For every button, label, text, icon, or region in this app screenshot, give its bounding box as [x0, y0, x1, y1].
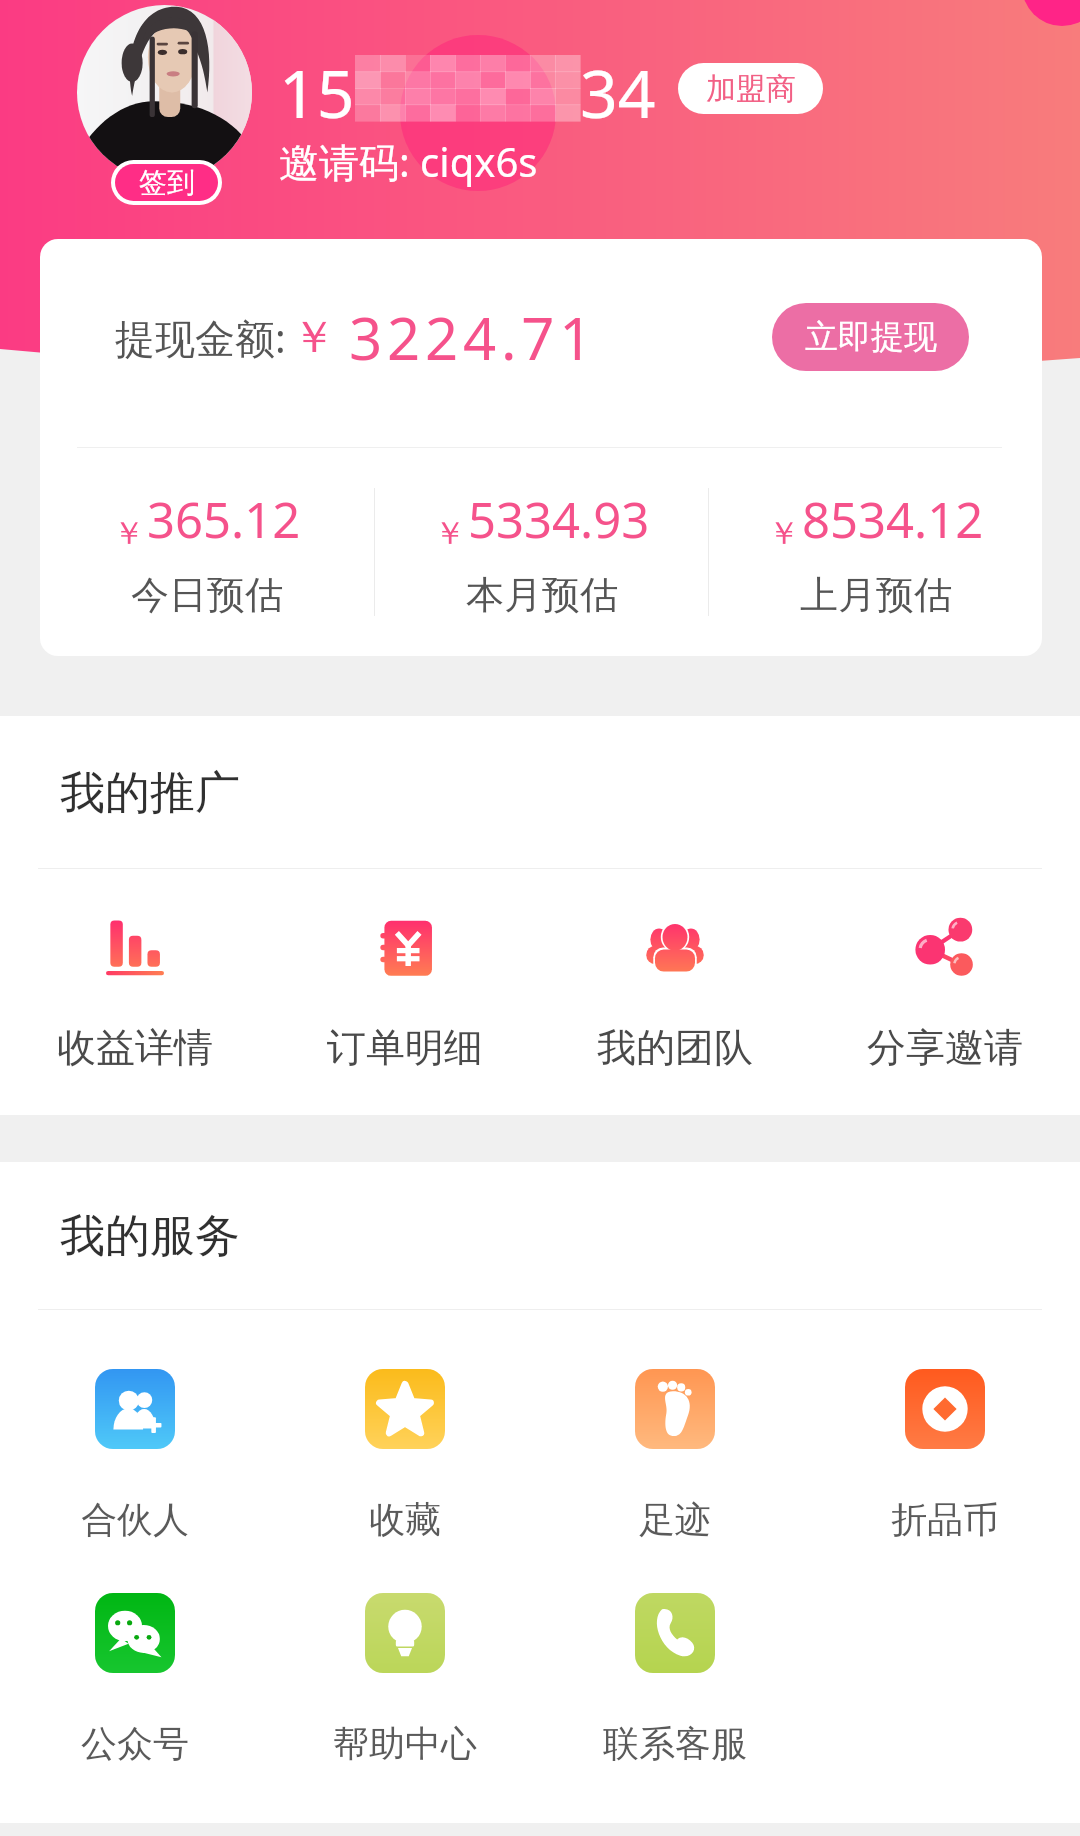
staticText: 我的服务 — [60, 1208, 240, 1265]
staticText: 我的团队 — [597, 1023, 753, 1072]
staticText: 本月预估 — [466, 571, 618, 619]
button[interactable]: 签到 — [115, 164, 218, 201]
staticText: 上月预估 — [800, 571, 952, 619]
staticText: 合伙人 — [81, 1497, 189, 1542]
staticText: 折品币 — [891, 1497, 999, 1542]
staticText: 8534.12 — [802, 486, 984, 553]
staticText: 签到 — [139, 165, 195, 200]
button[interactable]: ￥ — [375, 448, 708, 656]
staticText: 提现金额: — [115, 310, 286, 365]
button[interactable]: 订单明细 — [270, 884, 540, 1072]
button[interactable]: 收藏 — [270, 1325, 540, 1542]
button[interactable]: 我的团队 — [540, 884, 810, 1072]
staticText: 收藏 — [369, 1497, 441, 1542]
staticText: 5334.93 — [468, 486, 650, 553]
staticText: 收益详情 — [57, 1023, 213, 1072]
staticText: 足迹 — [639, 1497, 711, 1542]
staticText: 邀请码: ciqx6s — [279, 134, 538, 189]
button[interactable]: 联系客服 — [540, 1549, 810, 1766]
staticText: 分享邀请 — [867, 1023, 1023, 1072]
staticText: 365.12 — [147, 486, 301, 553]
staticText: 3224.71 — [349, 298, 598, 377]
button[interactable]: 帮助中心 — [270, 1549, 540, 1766]
staticText: 订单明细 — [327, 1023, 483, 1072]
staticText: 今日预估 — [131, 571, 283, 619]
button[interactable]: 收益详情 — [0, 884, 270, 1072]
staticText: 我的推广 — [60, 765, 240, 822]
staticText: ￥ — [292, 310, 336, 365]
staticText: 立即提现 — [805, 316, 937, 358]
staticText: 加盟商 — [706, 70, 796, 108]
button[interactable]: 立即提现 — [772, 303, 969, 371]
staticText: 34 — [580, 47, 656, 129]
staticText: ￥ — [113, 513, 145, 553]
staticText: 帮助中心 — [333, 1721, 477, 1766]
button[interactable]: 分享邀请 — [810, 884, 1080, 1072]
button[interactable]: Profile photo — [77, 5, 252, 180]
button[interactable]: 折品币 — [810, 1325, 1080, 1542]
staticText: ￥ — [768, 513, 800, 553]
button[interactable]: 公众号 — [0, 1549, 270, 1766]
staticText: 15 — [279, 47, 355, 129]
button[interactable]: 足迹 — [540, 1325, 810, 1542]
staticText: 联系客服 — [603, 1721, 747, 1766]
button[interactable]: 加盟商 — [678, 63, 823, 114]
button[interactable]: ￥ — [709, 448, 1042, 656]
staticText: ￥ — [434, 513, 466, 553]
button[interactable]: ￥ — [40, 448, 374, 656]
staticText: 公众号 — [81, 1721, 189, 1766]
button[interactable]: 合伙人 — [0, 1325, 270, 1542]
